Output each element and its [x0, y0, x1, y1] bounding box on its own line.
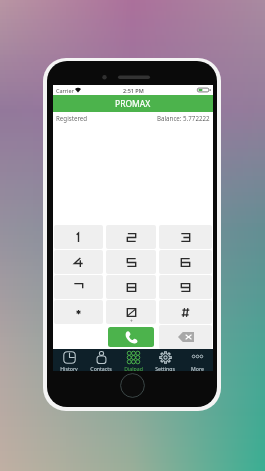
- button[interactable]: [106, 250, 156, 274]
- button[interactable]: Dialpad: [117, 349, 149, 371]
- button[interactable]: [54, 275, 103, 299]
- staticText: PROMAX: [115, 98, 151, 110]
- button[interactable]: +: [106, 300, 156, 324]
- button[interactable]: [159, 300, 212, 324]
- staticText: Balance: 5.772222: [157, 114, 210, 122]
- button[interactable]: [54, 250, 103, 274]
- button[interactable]: [54, 225, 103, 249]
- staticText: Registered: [56, 114, 88, 122]
- button[interactable]: History: [53, 349, 85, 371]
- button[interactable]: More: [181, 349, 213, 371]
- staticText: Contacts: [90, 365, 112, 371]
- staticText: 2:51 PM: [123, 87, 144, 94]
- button[interactable]: Home: [120, 373, 145, 398]
- button[interactable]: [106, 225, 156, 249]
- staticText: Dialpad: [124, 365, 143, 371]
- button[interactable]: [106, 275, 156, 299]
- button[interactable]: [159, 225, 212, 249]
- button[interactable]: [54, 300, 103, 324]
- button[interactable]: Backspace: [159, 325, 212, 349]
- button[interactable]: Call: [108, 327, 154, 347]
- staticText: More: [191, 365, 204, 371]
- button[interactable]: [159, 275, 212, 299]
- staticText: Carrier: [56, 87, 74, 94]
- staticText: Settings: [155, 365, 175, 371]
- staticText: History: [60, 365, 78, 371]
- button[interactable]: Contacts: [85, 349, 117, 371]
- button[interactable]: Settings: [149, 349, 181, 371]
- staticText: +: [130, 318, 133, 324]
- button[interactable]: [159, 250, 212, 274]
